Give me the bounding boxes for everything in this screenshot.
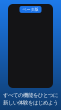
staticText: 新しい体験をはじめよう xyxy=(3,100,58,106)
staticText: すべての機能をひとつに xyxy=(3,92,58,99)
staticText: ベータ版 xyxy=(22,7,38,12)
